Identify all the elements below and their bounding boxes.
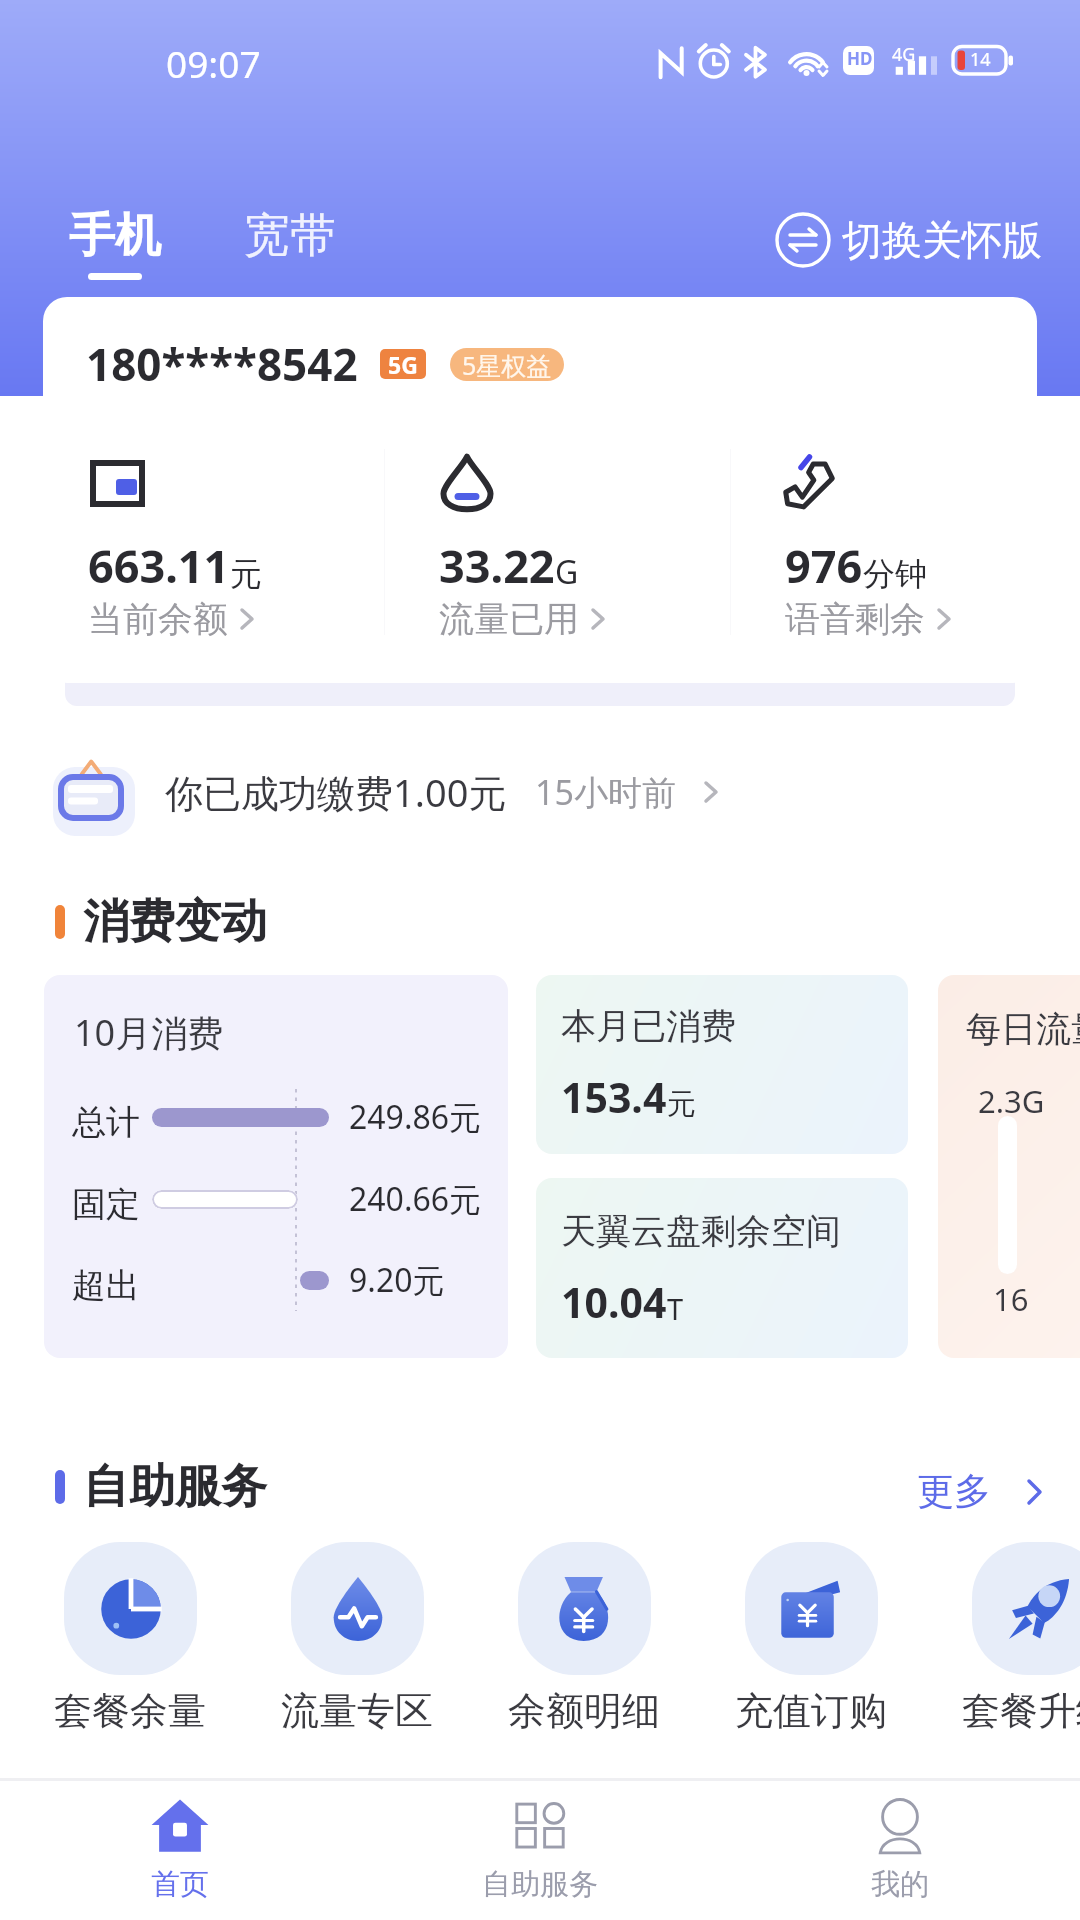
button[interactable]: 首页 — [70, 1796, 290, 1920]
button[interactable]: 33.22 — [439, 455, 739, 641]
button[interactable]: 自助服务 — [430, 1796, 650, 1920]
staticText: 套餐余量 — [54, 1687, 206, 1735]
staticText: 超出 — [72, 1264, 140, 1307]
button[interactable]: 充值订购 — [711, 1542, 911, 1735]
staticText: 元 — [667, 1086, 696, 1123]
button[interactable]: 我的 — [790, 1796, 1010, 1920]
button[interactable]: 余额明细 — [484, 1542, 684, 1735]
staticText: 每日流量 — [966, 1007, 1080, 1051]
staticText: 5G — [388, 349, 418, 379]
button[interactable]: 宽带 — [234, 201, 346, 271]
staticText: 分钟 — [863, 554, 927, 594]
staticText: 元 — [230, 554, 262, 594]
staticText: 240.66元 — [349, 1177, 482, 1221]
staticText: G — [555, 550, 579, 594]
staticText: 976 — [785, 535, 863, 596]
button[interactable]: 10月消费 — [44, 975, 508, 1358]
staticText: 消费变动 — [83, 893, 267, 951]
staticText: 天翼云盘剩余空间 — [561, 1209, 841, 1253]
button[interactable]: 流量专区 — [257, 1542, 457, 1735]
button[interactable]: 你已成功缴费1.00元 — [40, 750, 760, 834]
staticText: 宽带 — [244, 207, 336, 265]
staticText: 首页 — [151, 1866, 209, 1903]
button[interactable]: 663.11 — [88, 455, 388, 641]
button[interactable]: 天翼云盘剩余空间 — [536, 1178, 908, 1358]
staticText: 流量专区 — [281, 1687, 433, 1735]
staticText: 自助服务 — [482, 1866, 598, 1903]
staticText: 153.4 — [561, 1069, 667, 1125]
staticText: 余额明细 — [508, 1687, 660, 1735]
staticText: 套餐升级 — [962, 1687, 1080, 1735]
button[interactable]: 切换关怀版 — [769, 206, 1048, 274]
staticText: 手机 — [69, 207, 161, 265]
staticText: 语音剩余 — [785, 597, 925, 641]
staticText: 本月已消费 — [561, 1004, 736, 1048]
staticText: 充值订购 — [735, 1687, 887, 1735]
button[interactable]: 手机 — [59, 201, 171, 286]
staticText: 更多 — [917, 1468, 991, 1515]
staticText: 2.3G — [978, 1080, 1045, 1122]
button[interactable]: 更多 — [911, 1462, 1051, 1521]
staticText: 16 — [993, 1278, 1029, 1320]
staticText: 我的 — [871, 1866, 929, 1903]
staticText: 切换关怀版 — [842, 215, 1042, 265]
button[interactable]: 套餐余量 — [30, 1542, 230, 1735]
staticText: HD — [847, 47, 873, 70]
staticText: 09:07 — [166, 38, 261, 88]
staticText: 流量已用 — [439, 597, 579, 641]
staticText: T — [667, 1289, 684, 1328]
staticText: 10月消费 — [74, 1008, 224, 1057]
staticText: 自助服务 — [83, 1458, 267, 1516]
staticText: 180****8542 — [86, 334, 358, 394]
staticText: 10.04 — [561, 1274, 667, 1330]
staticText: 当前余额 — [88, 597, 228, 641]
staticText: 4G — [892, 42, 916, 67]
staticText: 15小时前 — [535, 769, 676, 815]
staticText: 9.20元 — [349, 1258, 445, 1302]
staticText: 5星权益 — [462, 348, 552, 381]
staticText: 你已成功缴费1.00元 — [165, 766, 507, 818]
button[interactable]: 本月已消费 — [536, 975, 908, 1154]
staticText: 总计 — [72, 1101, 140, 1144]
button[interactable]: 套餐升级 — [938, 1542, 1080, 1735]
staticText: 33.22 — [439, 535, 555, 596]
button[interactable]: 每日流量 — [938, 975, 1080, 1358]
staticText: 249.86元 — [349, 1095, 482, 1139]
staticText: 663.11 — [88, 535, 230, 596]
staticText: 固定 — [72, 1183, 140, 1226]
staticText: 14 — [970, 47, 991, 72]
button[interactable]: 976 — [785, 455, 1037, 641]
